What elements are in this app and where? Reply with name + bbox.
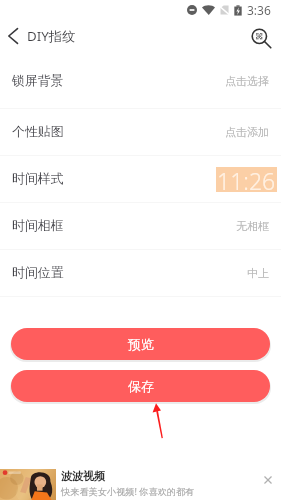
button[interactable]: 时间相框 xyxy=(0,203,281,249)
staticText: 个性贴图 xyxy=(12,124,64,140)
staticText: DIY指纹 xyxy=(27,27,76,45)
button[interactable]: Close ad xyxy=(260,472,276,488)
staticText: 保存 xyxy=(128,378,154,394)
staticText: 点击添加 xyxy=(225,125,269,139)
button[interactable]: 时间样式 xyxy=(0,156,281,202)
staticText: 波波视频 xyxy=(61,469,105,483)
button[interactable]: 预览 xyxy=(11,328,270,360)
staticText: 中上 xyxy=(247,266,269,280)
staticText: 锁屏背景 xyxy=(12,73,64,89)
staticText: 时间位置 xyxy=(12,265,64,281)
staticText: 预览 xyxy=(128,336,154,352)
button[interactable]: 锁屏背景 xyxy=(0,54,281,108)
button[interactable]: 保存 xyxy=(11,370,270,402)
staticText: 时间相框 xyxy=(12,218,64,234)
staticText: 无相框 xyxy=(236,219,269,233)
staticText: 3:36 xyxy=(247,2,271,18)
staticText: 11:26 xyxy=(217,165,276,190)
staticText: 点击选择 xyxy=(225,74,269,88)
button[interactable]: Scan code xyxy=(250,27,274,51)
staticText: 快来看美女小视频! 你喜欢的都有 xyxy=(61,485,195,498)
button[interactable]: DIY指纹 xyxy=(0,24,82,50)
staticText: 时间样式 xyxy=(12,171,64,187)
button[interactable]: 时间位置 xyxy=(0,250,281,296)
button[interactable]: 个性贴图 xyxy=(0,109,281,155)
